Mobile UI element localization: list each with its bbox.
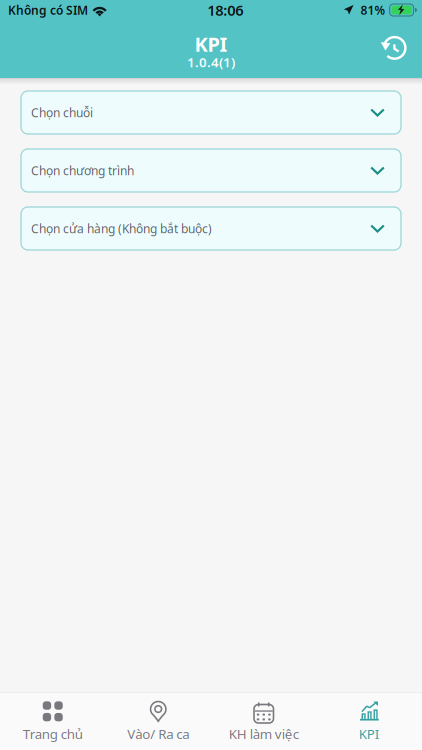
staticText: Chọn chuỗi <box>31 104 93 120</box>
button[interactable]: Trang chủ <box>0 692 105 750</box>
button[interactable]: Chọn cửa hàng (Không bắt buộc) <box>21 207 401 250</box>
button[interactable]: History <box>369 29 422 72</box>
staticText: 81% <box>361 2 386 18</box>
staticText: KPI <box>359 725 380 743</box>
button[interactable]: KH làm việc <box>211 692 316 750</box>
staticText: KH làm việc <box>229 725 299 743</box>
staticText: Chọn chương trình <box>31 162 134 178</box>
button[interactable]: KPI <box>316 692 422 750</box>
staticText: KPI <box>194 31 227 57</box>
staticText: 1.0.4(1) <box>187 53 235 71</box>
staticText: Trang chủ <box>23 725 83 743</box>
button[interactable]: Chọn chuỗi <box>21 91 401 134</box>
staticText: 18:06 <box>207 0 243 20</box>
button[interactable]: Chọn chương trình <box>21 149 401 192</box>
staticText: Chọn cửa hàng (Không bắt buộc) <box>31 220 212 236</box>
staticText: Vào/ Ra ca <box>127 725 189 743</box>
staticText: Không có SIM <box>8 2 88 18</box>
button[interactable]: Vào/ Ra ca <box>105 692 211 750</box>
